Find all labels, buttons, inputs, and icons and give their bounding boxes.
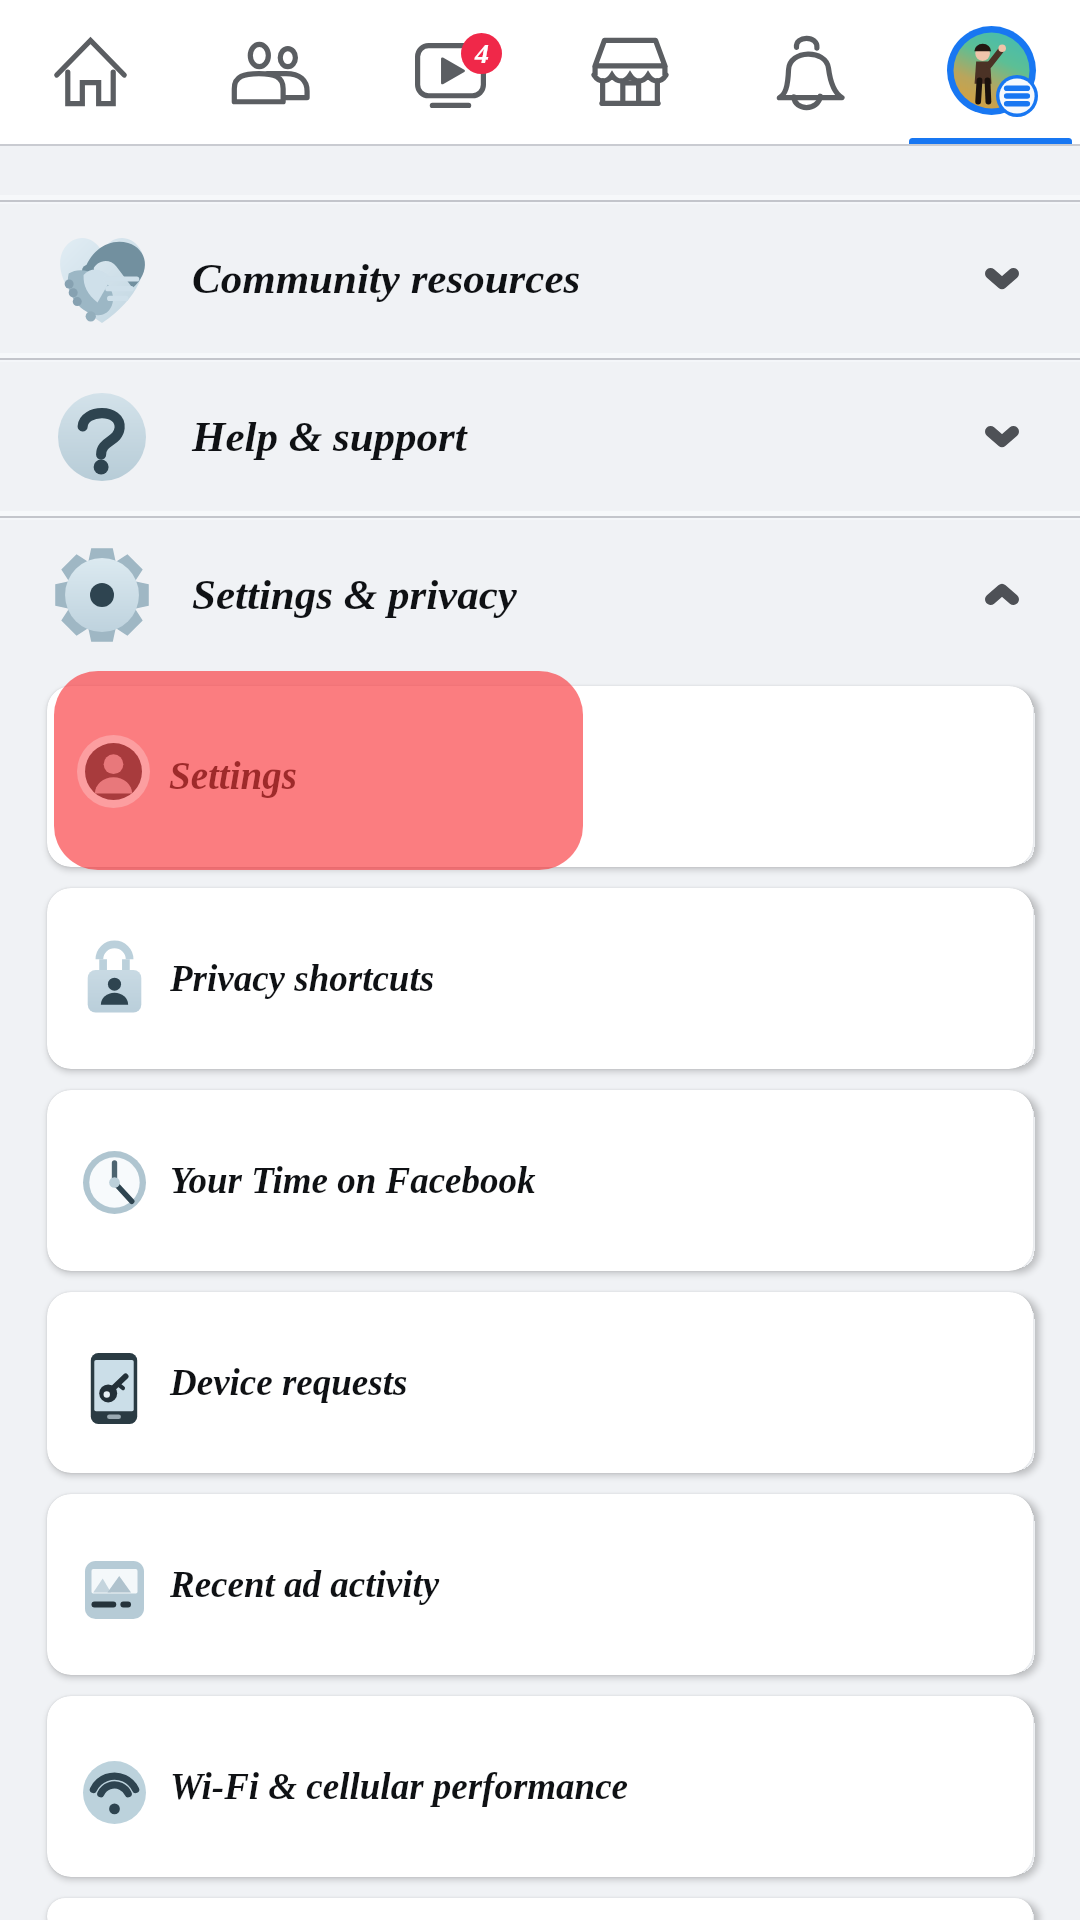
button[interactable]: Recent ad activity: [47, 1494, 1033, 1675]
button[interactable]: Home: [0, 0, 180, 144]
staticText: Help & support: [192, 413, 467, 461]
button[interactable]: Settings & privacy: [0, 520, 1080, 669]
staticText: Wi-Fi & cellular performance: [170, 1766, 629, 1807]
staticText: Privacy shortcuts: [170, 958, 435, 999]
staticText: Your Time on Facebook: [170, 1160, 536, 1201]
button[interactable]: Marketplace: [540, 0, 720, 144]
button[interactable]: Notifications: [720, 0, 900, 144]
button[interactable]: Friends: [180, 0, 360, 144]
staticText: Recent ad activity: [170, 1564, 440, 1605]
button[interactable]: Privacy shortcuts: [47, 888, 1033, 1069]
button[interactable]: Community resources: [0, 204, 1080, 353]
staticText: Settings: [169, 754, 297, 797]
button[interactable]: Video: [360, 0, 540, 144]
button[interactable]: [47, 686, 1033, 867]
button[interactable]: Your Time on Facebook: [47, 1090, 1033, 1271]
button[interactable]: Help & support: [0, 362, 1080, 511]
button[interactable]: Menu: [900, 0, 1080, 144]
button[interactable]: Device requests: [47, 1292, 1033, 1473]
staticText: 4: [475, 38, 489, 69]
staticText: Device requests: [170, 1362, 408, 1403]
button[interactable]: Wi-Fi & cellular performance: [47, 1696, 1033, 1877]
staticText: Community resources: [192, 255, 581, 303]
staticText: Settings & privacy: [192, 571, 517, 619]
